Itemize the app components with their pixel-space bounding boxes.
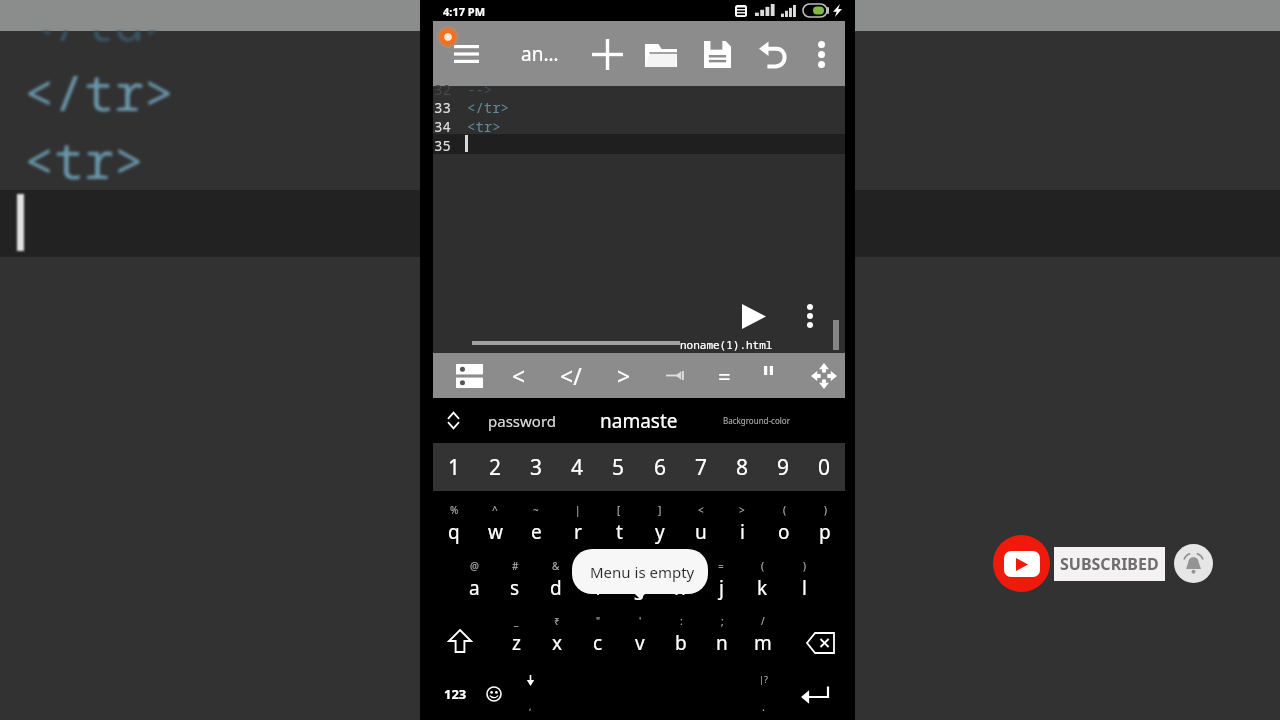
button[interactable]: ~	[516, 500, 556, 554]
button[interactable]: namaste	[579, 398, 699, 443]
button[interactable]: password	[462, 398, 582, 443]
staticText: password	[488, 411, 556, 431]
button[interactable]: 2	[475, 443, 515, 491]
button[interactable]: ^	[475, 500, 515, 554]
button[interactable]: >	[602, 353, 646, 398]
button[interactable]: ₹	[537, 611, 577, 665]
button[interactable]: |?	[741, 666, 785, 720]
staticText: e	[531, 519, 542, 545]
staticText: '	[639, 614, 642, 628]
button[interactable]: YouTube channel	[993, 535, 1050, 592]
button[interactable]: '	[620, 611, 660, 665]
button[interactable]: Open file	[637, 30, 685, 78]
button[interactable]: [	[599, 500, 639, 554]
button[interactable]: @	[454, 556, 494, 610]
button[interactable]: %	[434, 500, 474, 554]
button[interactable]: 5	[598, 443, 638, 491]
button[interactable]: Move cursor	[802, 353, 846, 398]
staticText: )	[803, 559, 806, 573]
button[interactable]: =	[702, 353, 746, 398]
staticText: +	[677, 559, 683, 573]
button[interactable]: *	[578, 556, 618, 610]
button[interactable]: 1	[434, 443, 474, 491]
staticText: 33	[434, 98, 451, 117]
button[interactable]: :	[661, 611, 701, 665]
button[interactable]: 3	[516, 443, 556, 491]
button[interactable]: Menu is empty	[572, 549, 708, 594]
button[interactable]: +	[660, 556, 700, 610]
button[interactable]: 6	[640, 443, 680, 491]
staticText: 1	[448, 453, 461, 482]
button[interactable]: Menu	[444, 31, 489, 75]
button[interactable]: 8	[722, 443, 762, 491]
button[interactable]: (	[742, 556, 782, 610]
button[interactable]: Backspace	[798, 611, 842, 665]
staticText: Background-color	[723, 415, 790, 426]
staticText: p	[819, 519, 831, 545]
button[interactable]: Shift	[438, 611, 482, 665]
staticText: c	[593, 630, 603, 656]
staticText: -->	[467, 80, 493, 99]
button[interactable]: ]	[640, 500, 680, 554]
staticText: _	[514, 614, 519, 628]
staticText: k	[757, 575, 768, 601]
button[interactable]: <	[497, 353, 541, 398]
button[interactable]: 4	[557, 443, 597, 491]
button[interactable]: Insert quotation marks	[746, 353, 790, 398]
staticText: j	[719, 575, 724, 601]
button[interactable]: Space	[436, 666, 636, 720]
button[interactable]: New file	[583, 30, 631, 78]
staticText: 35	[434, 136, 451, 155]
button[interactable]: |	[558, 500, 598, 554]
button[interactable]: Background-color	[696, 398, 816, 443]
staticText: 0	[818, 453, 831, 482]
staticText: =	[718, 559, 724, 573]
staticText: :	[680, 614, 683, 628]
staticText: |	[575, 503, 581, 517]
button[interactable]: #	[495, 556, 535, 610]
button[interactable]: (	[764, 500, 804, 554]
staticText: x	[552, 630, 563, 656]
button[interactable]: )	[784, 556, 824, 610]
button[interactable]: Notifications	[1174, 544, 1213, 583]
staticText: b	[675, 630, 687, 656]
button[interactable]: "	[578, 611, 618, 665]
staticText: </tr>	[467, 98, 509, 117]
button[interactable]: Tab	[653, 353, 697, 398]
button[interactable]: SUBSCRIBED	[1054, 547, 1165, 581]
button[interactable]: 7	[681, 443, 721, 491]
button[interactable]: ;	[702, 611, 742, 665]
staticText: 8	[736, 453, 749, 482]
staticText: d	[550, 575, 562, 601]
button[interactable]: Snippets	[447, 353, 491, 398]
button[interactable]: /	[743, 611, 783, 665]
button[interactable]: Emoji	[472, 666, 516, 720]
button[interactable]: Enter	[792, 666, 836, 720]
button[interactable]: -	[619, 556, 659, 610]
button[interactable]: 123	[433, 666, 477, 720]
button[interactable]: Editor options	[790, 291, 830, 341]
button[interactable]: )	[805, 500, 845, 554]
staticText: l	[802, 575, 807, 601]
button[interactable]: Expand suggestions	[433, 398, 473, 443]
button[interactable]: 9	[763, 443, 803, 491]
staticText: 9	[777, 453, 790, 482]
button[interactable]: an…	[515, 33, 565, 75]
button[interactable]: </	[549, 353, 593, 398]
staticText: ,	[529, 700, 532, 712]
button[interactable]: Undo	[749, 30, 797, 78]
button[interactable]: <	[681, 500, 721, 554]
button[interactable]: >	[722, 500, 762, 554]
button[interactable]: 0	[804, 443, 844, 491]
staticText: y	[655, 519, 665, 545]
button[interactable]: &	[536, 556, 576, 610]
button[interactable]: More options	[797, 30, 845, 78]
button[interactable]: =	[701, 556, 741, 610]
button[interactable]: _	[496, 611, 536, 665]
staticText: s	[510, 575, 520, 601]
staticText: 3	[530, 453, 543, 482]
button[interactable]: Run	[730, 291, 778, 341]
button[interactable]: Save file	[693, 30, 741, 78]
staticText: r	[574, 519, 582, 545]
staticText: o	[778, 519, 790, 545]
